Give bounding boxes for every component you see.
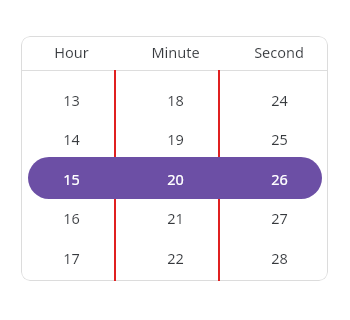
staticText: Minute [151, 42, 200, 62]
button[interactable]: Hour [16, 36, 126, 68]
button[interactable]: Selected time 15:20:26 [28, 157, 322, 199]
button[interactable]: 14 [23, 120, 119, 158]
staticText: 19 [167, 129, 184, 149]
staticText: 26 [271, 169, 288, 189]
staticText: 28 [271, 248, 288, 268]
staticText: 18 [167, 90, 184, 110]
button[interactable]: 24 [231, 81, 327, 119]
staticText: 25 [271, 129, 288, 149]
staticText: 22 [167, 248, 184, 268]
staticText: Second [254, 42, 304, 62]
button[interactable]: 16 [23, 199, 119, 237]
button[interactable]: 21 [127, 199, 223, 237]
button[interactable]: 13 [23, 81, 119, 119]
staticText: 27 [271, 208, 288, 228]
button[interactable]: Second [224, 36, 334, 68]
button[interactable]: 17 [23, 239, 119, 277]
button[interactable]: 26 [231, 160, 327, 198]
staticText: 20 [167, 169, 184, 189]
button[interactable]: 15 [23, 160, 119, 198]
button[interactable]: 22 [127, 239, 223, 277]
staticText: 13 [63, 90, 80, 110]
staticText: 16 [63, 208, 80, 228]
button[interactable]: Minute [120, 36, 230, 68]
staticText: 21 [167, 208, 184, 228]
staticText: 17 [63, 248, 80, 268]
button[interactable]: 20 [127, 160, 223, 198]
staticText: 15 [63, 169, 80, 189]
staticText: 24 [271, 90, 288, 110]
staticText: Hour [54, 42, 89, 62]
button[interactable]: 28 [231, 239, 327, 277]
button[interactable]: 27 [231, 199, 327, 237]
button[interactable]: 18 [127, 81, 223, 119]
button[interactable]: 19 [127, 120, 223, 158]
button[interactable]: 25 [231, 120, 327, 158]
staticText: 14 [63, 129, 80, 149]
